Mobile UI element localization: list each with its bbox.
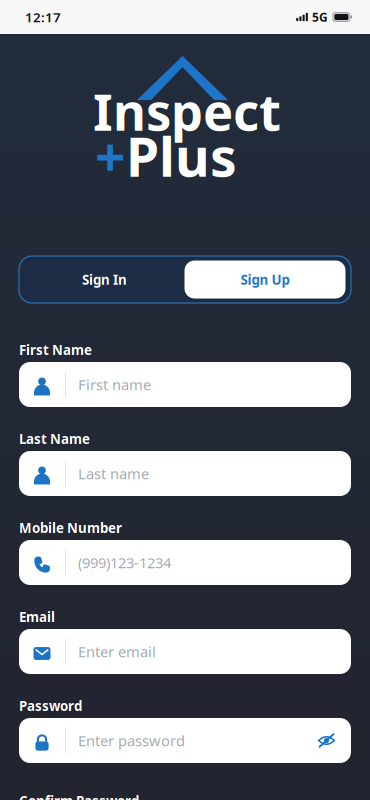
staticText: Sign In	[82, 271, 127, 288]
staticText: Password	[19, 697, 82, 715]
staticText: 12:17	[25, 8, 61, 26]
staticText: Confirm Password	[19, 792, 139, 800]
staticText: Enter password	[78, 731, 185, 750]
button[interactable]: First name	[19, 362, 351, 407]
staticText: Mobile Number	[19, 519, 122, 537]
staticText: Last Name	[19, 430, 90, 448]
button[interactable]: Enter email	[19, 629, 351, 674]
staticText: Inspect	[93, 77, 281, 145]
button[interactable]: Enter password	[19, 718, 351, 763]
staticText: First name	[78, 375, 151, 394]
button[interactable]: Sign Up	[184, 260, 345, 298]
button[interactable]: Sign In	[24, 260, 184, 298]
staticText: Enter email	[78, 642, 156, 661]
staticText: Sign Up	[240, 271, 289, 288]
staticText: 5G	[312, 9, 328, 25]
staticText: Last name	[78, 464, 149, 483]
button[interactable]: (999)123-1234	[19, 540, 351, 585]
staticText: +	[95, 121, 126, 191]
staticText: (999)123-1234	[78, 553, 171, 572]
button[interactable]: Last name	[19, 451, 351, 496]
staticText: Email	[19, 608, 55, 626]
staticText: First Name	[19, 341, 92, 359]
staticText: Plus	[126, 121, 237, 191]
